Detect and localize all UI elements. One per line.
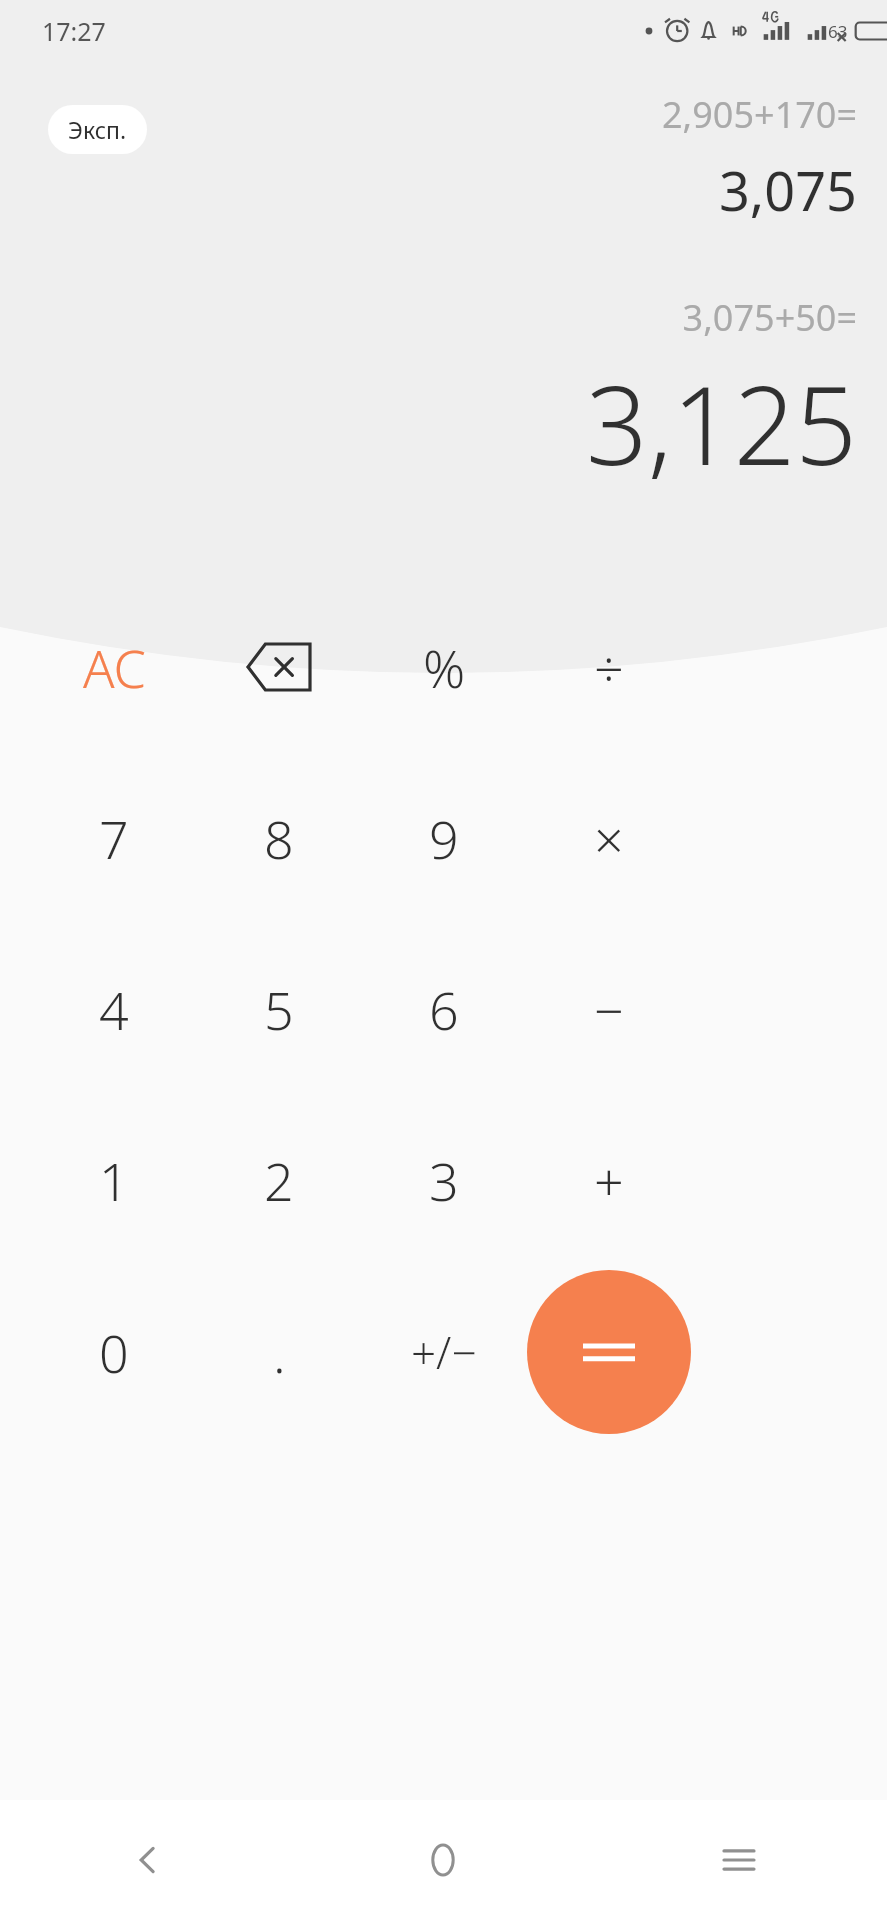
- button[interactable]: 1: [32, 1098, 196, 1262]
- button[interactable]: 2: [197, 1098, 361, 1262]
- staticText: 3,125: [0, 350, 857, 497]
- button[interactable]: 5: [197, 927, 361, 1091]
- button[interactable]: %: [362, 585, 526, 749]
- button[interactable]: 7: [32, 756, 196, 920]
- staticText: 4: [99, 974, 129, 1045]
- staticText: 7: [99, 803, 129, 874]
- button[interactable]: 9: [362, 756, 526, 920]
- staticText: 2: [264, 1145, 294, 1216]
- button[interactable]: +/−: [362, 1270, 526, 1434]
- button[interactable]: +: [527, 1098, 691, 1262]
- button[interactable]: 0: [32, 1270, 196, 1434]
- staticText: ×: [594, 803, 624, 874]
- staticText: Эксп.: [68, 114, 127, 145]
- staticText: 2,905+170=: [0, 90, 857, 139]
- staticText: −: [594, 974, 624, 1045]
- button[interactable]: [527, 1270, 691, 1434]
- button[interactable]: ÷: [527, 585, 691, 749]
- button[interactable]: Эксп.: [48, 105, 147, 154]
- button[interactable]: 3: [362, 1098, 526, 1262]
- button[interactable]: Home: [295, 1800, 591, 1920]
- staticText: 3,075: [0, 153, 857, 227]
- button[interactable]: −: [527, 927, 691, 1091]
- staticText: 3: [429, 1145, 459, 1216]
- staticText: 3,075+50=: [0, 293, 857, 342]
- button[interactable]: 4: [32, 927, 196, 1091]
- staticText: 5: [264, 974, 294, 1045]
- button[interactable]: Recent apps: [591, 1800, 887, 1920]
- staticText: ÷: [594, 632, 624, 703]
- button[interactable]: AC: [32, 585, 196, 749]
- staticText: 17:27: [42, 14, 106, 48]
- staticText: +/−: [411, 1322, 477, 1382]
- staticText: +: [594, 1145, 624, 1216]
- staticText: 0: [99, 1317, 129, 1388]
- staticText: 63: [828, 20, 848, 43]
- staticText: AC: [83, 632, 146, 703]
- button[interactable]: 6: [362, 927, 526, 1091]
- staticText: 9: [429, 803, 459, 874]
- staticText: .: [273, 1317, 286, 1388]
- button[interactable]: Backspace: [197, 585, 361, 749]
- button[interactable]: ×: [527, 756, 691, 920]
- staticText: 6: [429, 974, 459, 1045]
- staticText: %: [423, 632, 466, 703]
- button[interactable]: 8: [197, 756, 361, 920]
- button[interactable]: .: [197, 1270, 361, 1434]
- staticText: 1: [99, 1145, 129, 1216]
- button[interactable]: Back: [0, 1800, 295, 1920]
- staticText: 8: [264, 803, 294, 874]
